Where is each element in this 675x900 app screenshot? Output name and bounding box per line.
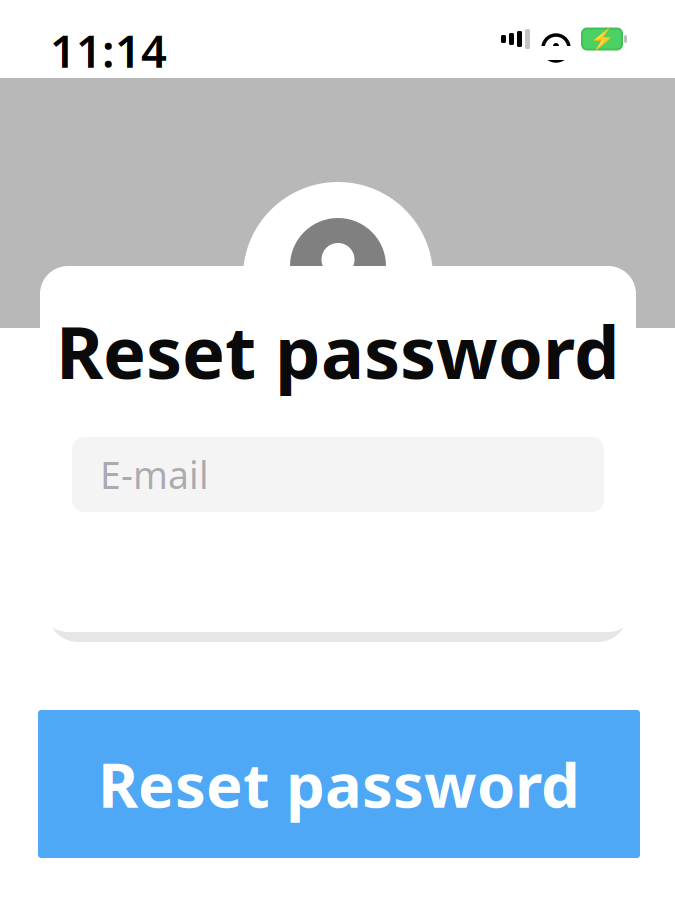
staticText: Reset password	[56, 303, 620, 399]
staticText: Reset password	[98, 743, 580, 825]
button[interactable]: E-mail	[72, 437, 604, 512]
staticText: E-mail	[100, 450, 209, 499]
button[interactable]: Reset password	[38, 710, 640, 858]
staticText: ⚡	[589, 28, 614, 50]
staticText: 11:14	[50, 20, 167, 80]
